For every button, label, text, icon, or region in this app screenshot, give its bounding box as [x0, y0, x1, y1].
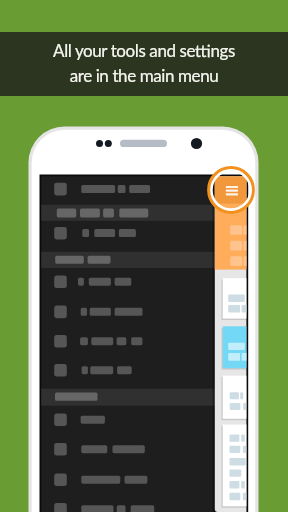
staticText: All your tools and settings are in the m…	[53, 40, 235, 85]
button[interactable]: Open main menu	[207, 166, 255, 214]
